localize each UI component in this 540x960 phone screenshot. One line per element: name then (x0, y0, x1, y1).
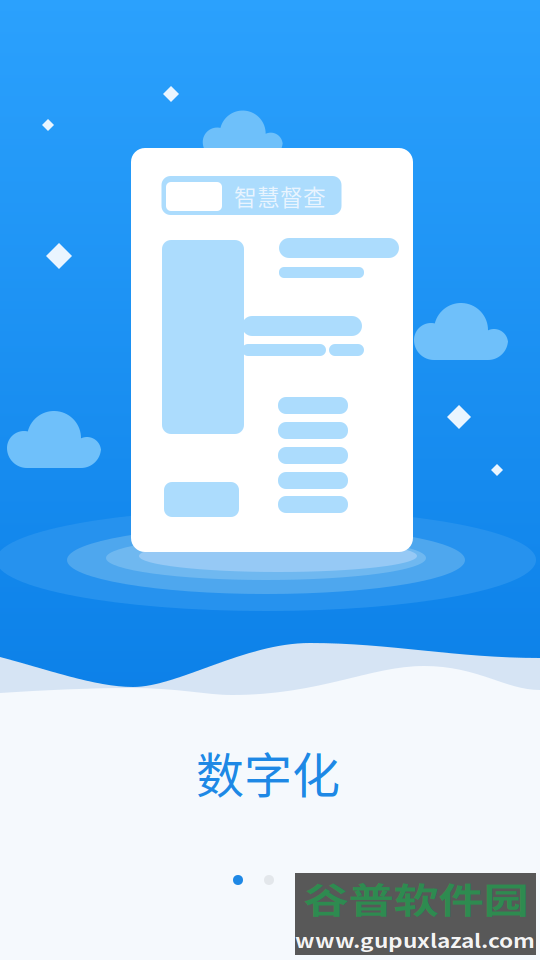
button[interactable]: Page 1 (233, 875, 243, 885)
staticText: 谷普软件园 (303, 865, 528, 931)
staticText: www.gupuxlazal.com (295, 924, 535, 956)
staticText: 智慧督查 (234, 180, 326, 212)
staticText: 数字化 (196, 737, 340, 807)
button[interactable]: Page 2 (264, 875, 274, 885)
